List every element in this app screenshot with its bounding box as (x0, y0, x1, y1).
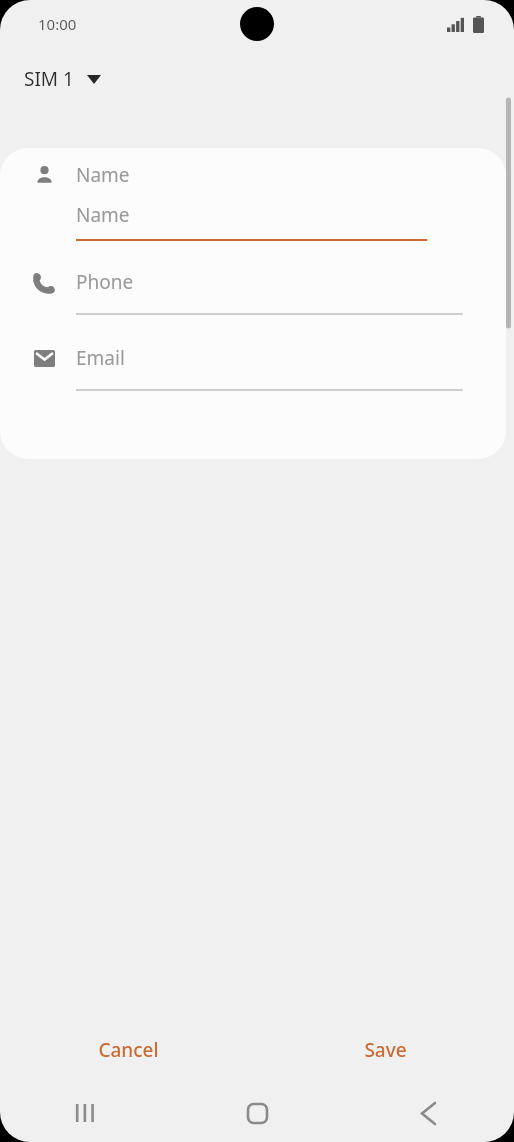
button[interactable]: Cancel (0, 1024, 257, 1076)
other: Name (32, 163, 56, 187)
button[interactable]: SIM 1 (20, 60, 105, 98)
staticText: Name (76, 162, 130, 188)
staticText: Name (76, 202, 130, 228)
staticText: 10:00 (38, 14, 77, 34)
button[interactable]: Back (343, 1084, 514, 1142)
staticText: Phone (76, 269, 134, 295)
staticText: SIM 1 (24, 66, 74, 92)
other: Email (32, 346, 56, 370)
button[interactable]: Home (172, 1084, 343, 1142)
button[interactable]: Recent apps (0, 1084, 172, 1142)
staticText: Email (76, 345, 125, 371)
button[interactable]: Save (257, 1024, 514, 1076)
other: Phone (32, 270, 56, 294)
button[interactable]: Phone (0, 269, 506, 345)
button[interactable]: Email (0, 345, 506, 421)
staticText: Save (364, 1037, 407, 1063)
button[interactable]: Name (0, 162, 506, 269)
staticText: Cancel (98, 1037, 159, 1063)
